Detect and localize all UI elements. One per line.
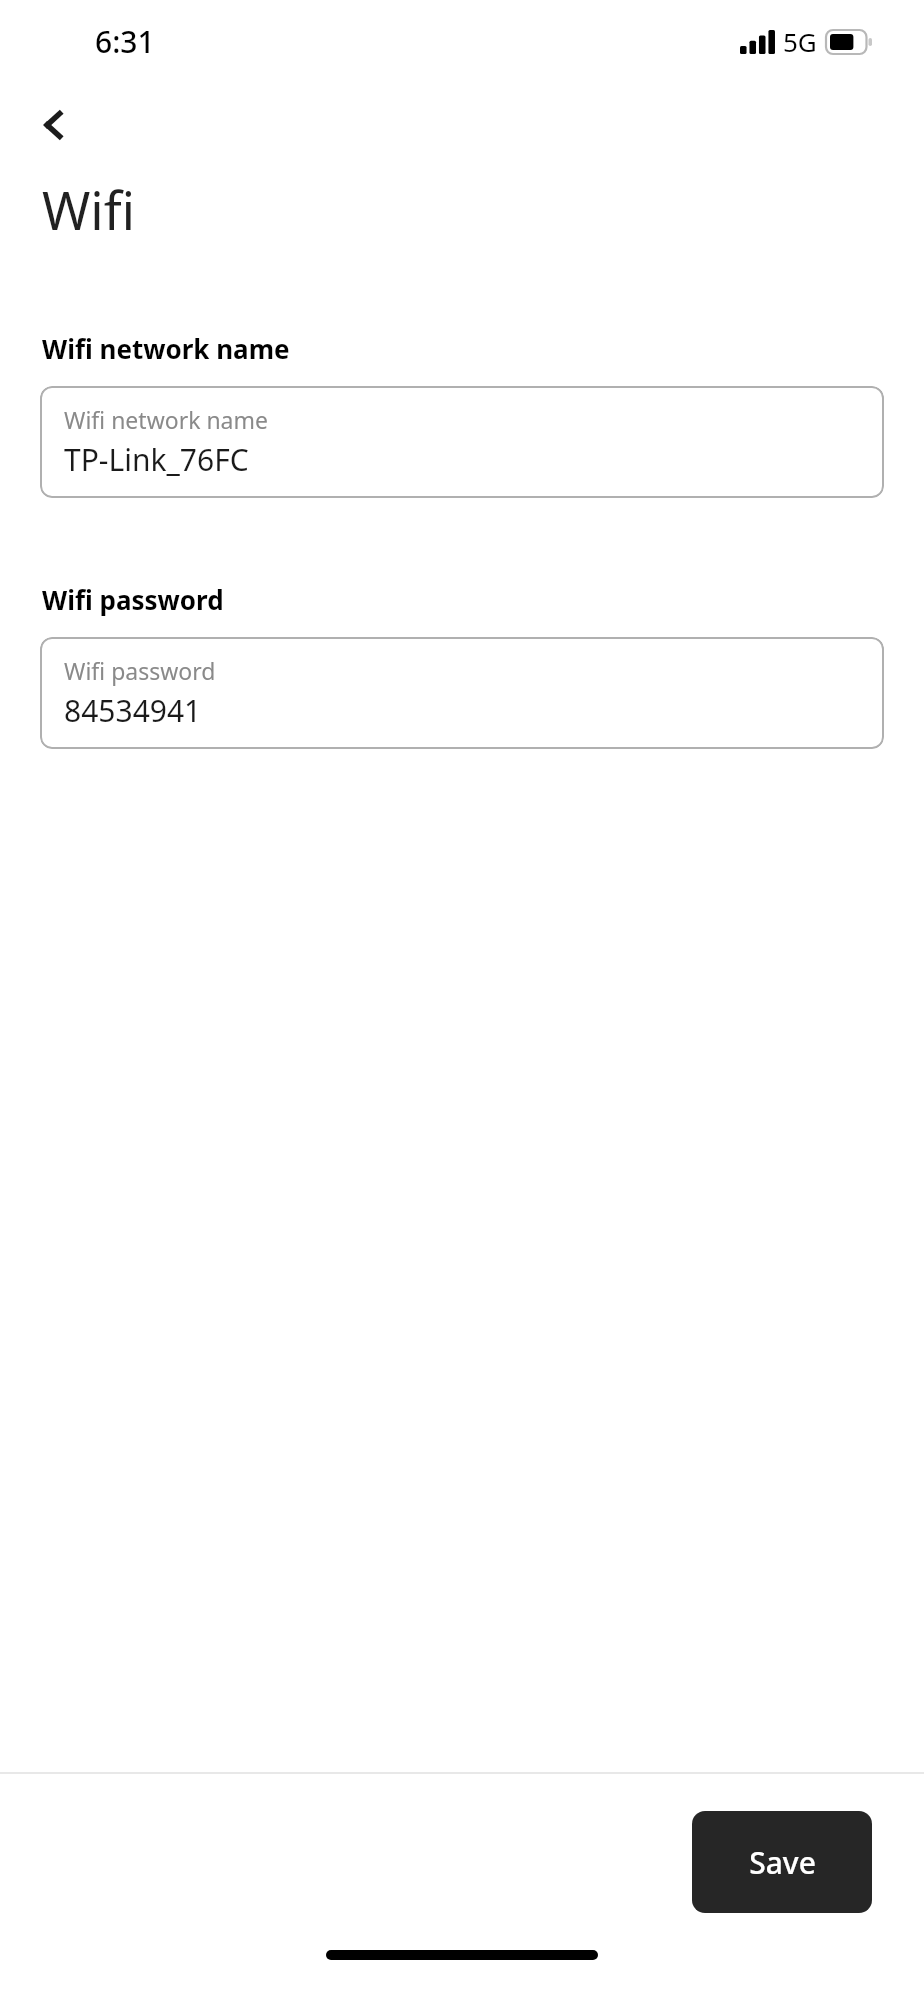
staticText: Wifi password [64, 655, 216, 686]
button[interactable]: Save [692, 1811, 872, 1913]
staticText: Wifi network name [42, 331, 290, 366]
staticText: 6:31 [95, 21, 155, 62]
staticText: Wifi network name [64, 404, 268, 435]
staticText: TP-Link_76FC [64, 439, 249, 480]
staticText: Save [749, 1842, 816, 1883]
button[interactable]: Back [24, 94, 86, 156]
staticText: Wifi [42, 174, 136, 245]
staticText: 5G [783, 24, 817, 59]
button[interactable]: Wifi password [40, 637, 884, 749]
button[interactable]: Wifi network name [40, 386, 884, 498]
staticText: 84534941 [64, 690, 202, 731]
staticText: Wifi password [42, 582, 224, 617]
